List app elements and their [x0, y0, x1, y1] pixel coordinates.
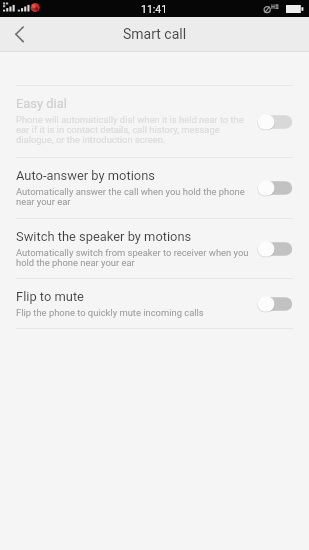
button[interactable]: Toggle	[257, 296, 293, 312]
staticText: Switch the speaker by motions	[16, 229, 192, 244]
staticText: Automatically answer the call when you h…	[16, 186, 249, 207]
staticText: 11:41	[141, 3, 168, 15]
button[interactable]: Switch the speaker by motions	[0, 219, 309, 278]
staticText: Phone will automatically dial when it is…	[16, 114, 249, 145]
staticText: Automatically switch from speaker to rec…	[16, 247, 249, 268]
staticText: Flip to mute	[16, 289, 84, 304]
staticText: Auto-answer by motions	[16, 168, 155, 183]
button[interactable]: Back	[0, 17, 40, 51]
staticText: Easy dial	[16, 96, 67, 111]
button[interactable]: Toggle	[257, 241, 293, 257]
staticText: Flip the phone to quickly mute incoming …	[16, 307, 204, 318]
button[interactable]: Toggle	[257, 180, 293, 196]
button[interactable]: Flip to mute	[0, 279, 309, 328]
button[interactable]: Auto-answer by motions	[0, 158, 309, 218]
staticText: Smart call	[123, 26, 187, 42]
button[interactable]: Toggle	[257, 114, 293, 130]
button[interactable]: Easy dial	[0, 86, 309, 157]
